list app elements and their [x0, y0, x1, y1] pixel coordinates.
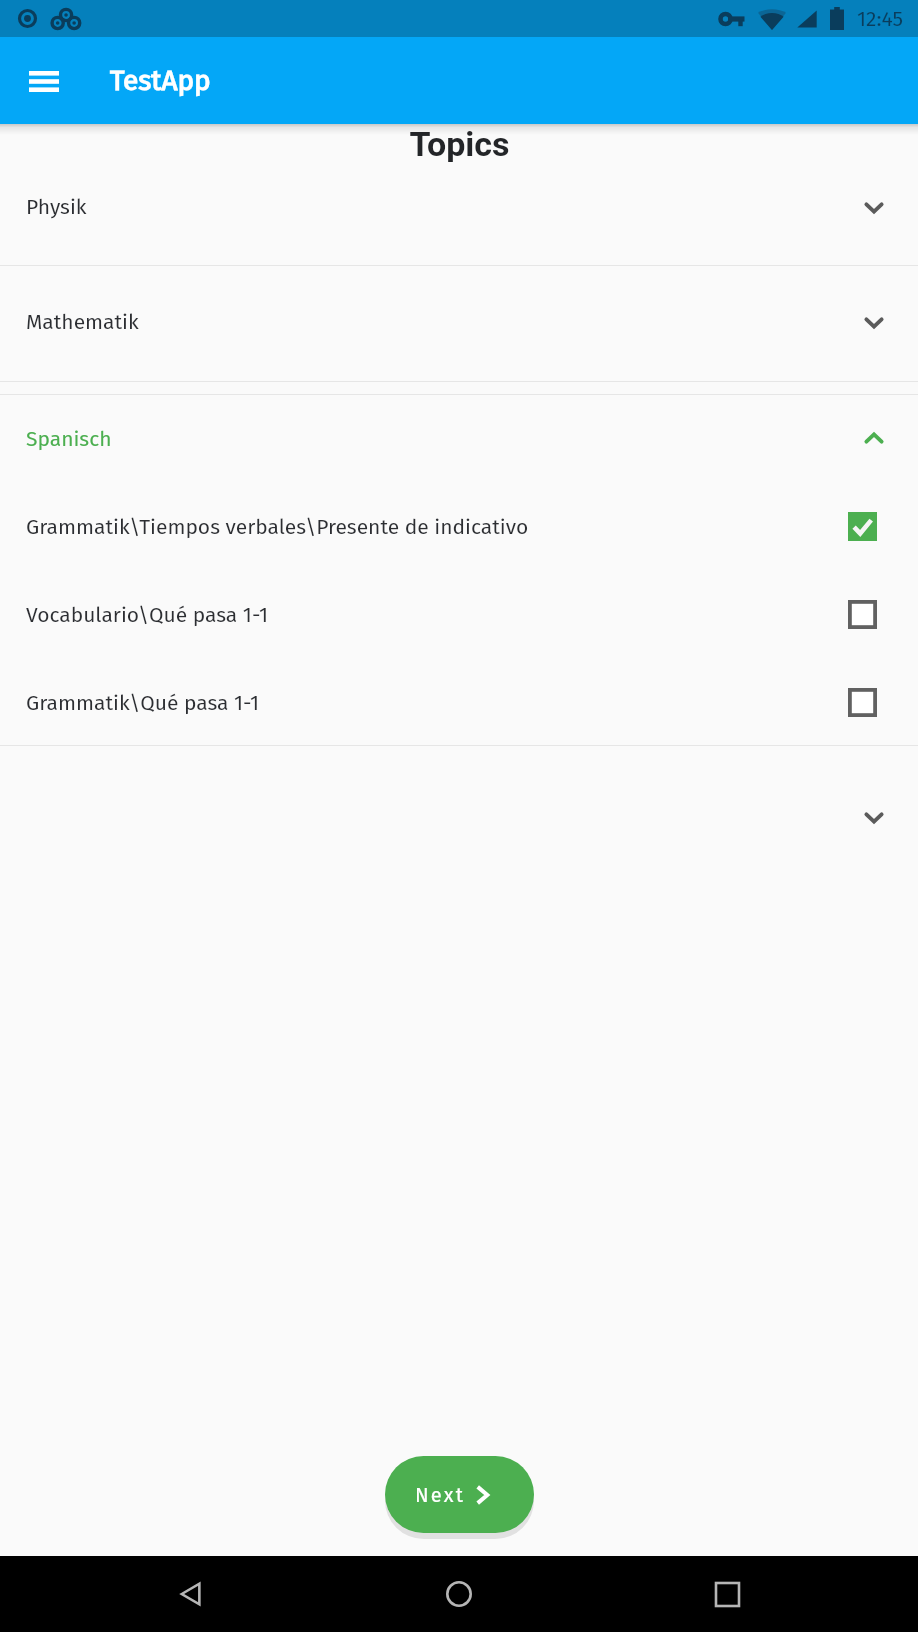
staticText: Next: [415, 1483, 466, 1507]
button[interactable]: Expand topic: [0, 751, 918, 851]
button[interactable]: Back: [161, 1564, 221, 1624]
button[interactable]: Vocabulario\Qué pasa 1-1: [0, 574, 918, 662]
button[interactable]: Grammatik\Tiempos verbales\Presente de i…: [0, 486, 918, 574]
button[interactable]: Grammatik\Qué pasa 1-1: [0, 662, 918, 750]
staticText: 12:45: [857, 6, 903, 31]
staticText: TestApp: [110, 64, 211, 98]
button[interactable]: Expand Mathematik: [0, 271, 918, 386]
staticText: Physik: [26, 194, 87, 219]
staticText: Topics: [409, 124, 510, 162]
button[interactable]: Next: [385, 1456, 534, 1533]
staticText: Spanisch: [26, 426, 112, 451]
button[interactable]: Recent apps: [697, 1564, 757, 1624]
staticText: Grammatik\Tiempos verbales\Presente de i…: [26, 514, 529, 539]
button[interactable]: Expand Physik: [0, 169, 918, 270]
staticText: Mathematik: [26, 309, 139, 334]
button[interactable]: Home: [429, 1564, 489, 1624]
button[interactable]: Open navigation menu: [20, 57, 68, 105]
button[interactable]: Collapse Spanisch: [0, 400, 918, 486]
staticText: Grammatik\Qué pasa 1-1: [26, 690, 260, 715]
staticText: Vocabulario\Qué pasa 1-1: [26, 602, 268, 627]
